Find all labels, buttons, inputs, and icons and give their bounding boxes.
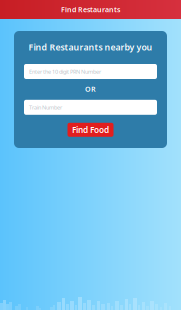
staticText: Train Number — [29, 103, 62, 111]
button[interactable]: Enter the 10 digit PRN Number — [24, 64, 157, 79]
staticText: Find Restaurants — [61, 5, 120, 14]
button[interactable]: Find Food — [67, 123, 113, 137]
staticText: OR — [85, 84, 96, 94]
button[interactable]: Train Number — [24, 100, 157, 115]
staticText: Find Restaurants nearby you — [28, 41, 152, 53]
staticText: Find Food — [72, 124, 109, 135]
staticText: Enter the 10 digit PRN Number — [29, 68, 101, 75]
